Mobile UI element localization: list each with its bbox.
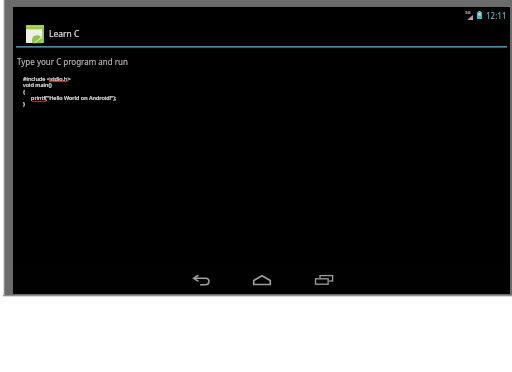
staticText: Learn C [49, 28, 80, 40]
staticText: void main() [23, 81, 52, 88]
button[interactable]: Home [242, 265, 282, 295]
button[interactable]: Recent apps [304, 265, 344, 295]
staticText: Type your C program and run [17, 56, 128, 67]
button[interactable]: C source code editor [14, 66, 507, 264]
staticText: { [23, 88, 26, 95]
staticText: printf("Hello World on Android!"); [31, 94, 117, 101]
button[interactable]: Learn C [26, 21, 86, 46]
staticText: } [23, 100, 26, 107]
button[interactable]: Back [181, 265, 221, 295]
staticText: #include <stdio.h> [23, 75, 71, 82]
staticText: 3G [465, 10, 471, 16]
staticText: 12:11 [486, 10, 507, 21]
